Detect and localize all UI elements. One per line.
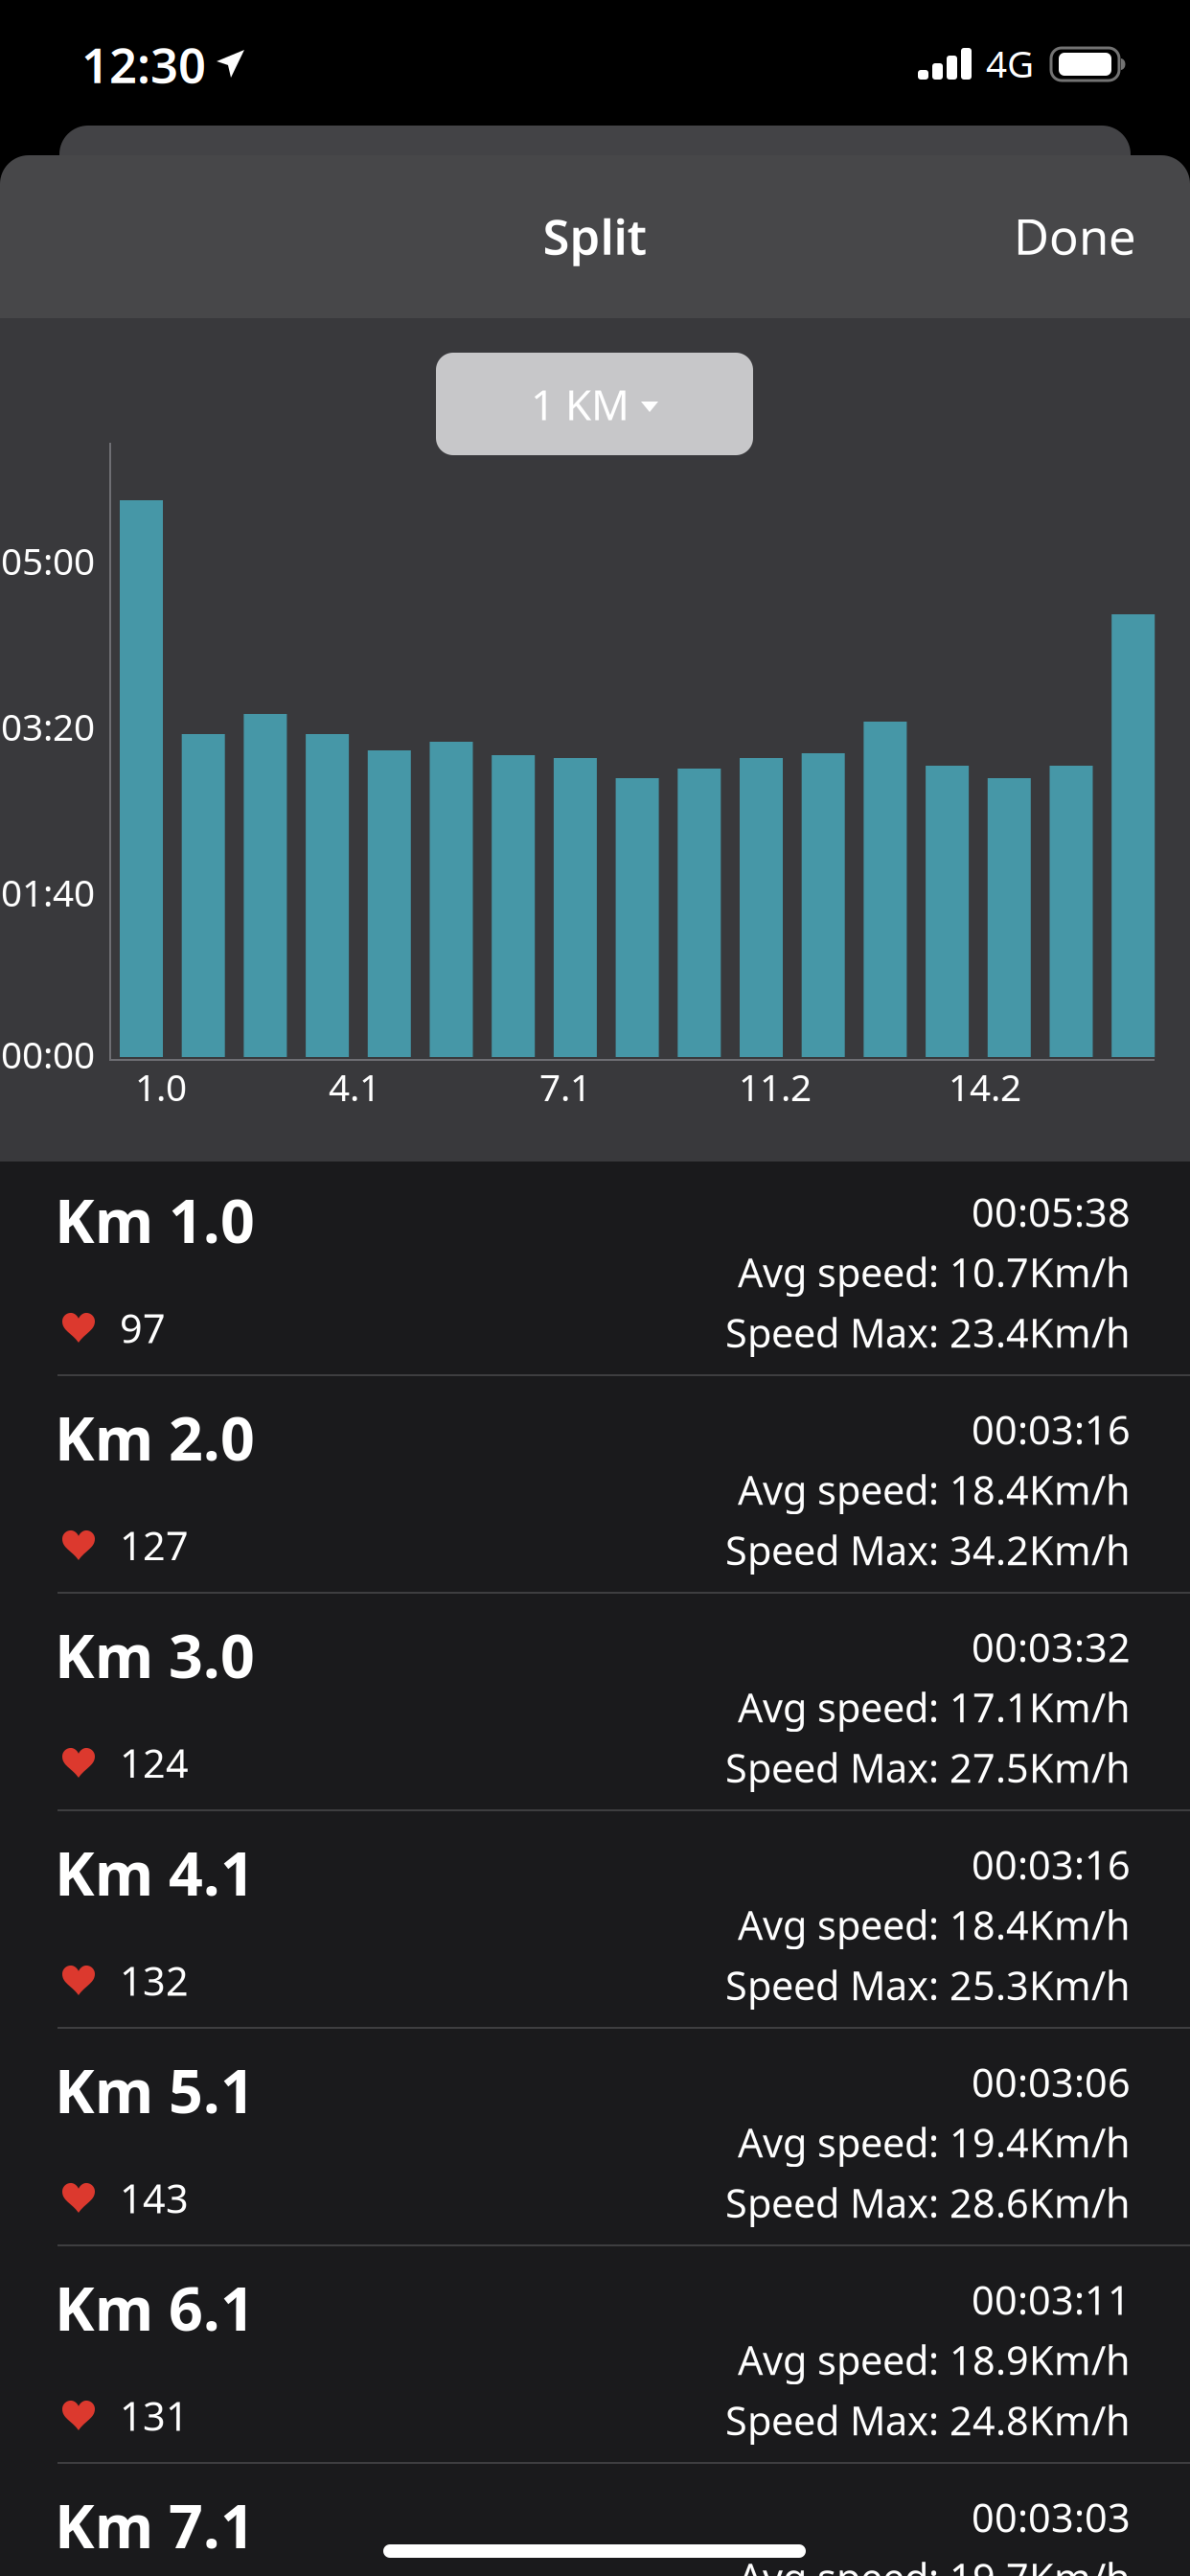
staticText: 12:30 — [81, 32, 206, 97]
staticText: 143 — [120, 2172, 189, 2224]
staticText: Avg speed: 10.7Km/h — [738, 1246, 1131, 1298]
staticText: Km 5.1 — [55, 2050, 255, 2130]
staticText: Avg speed: 18.4Km/h — [738, 1898, 1131, 1951]
staticText: 14.2 — [949, 1062, 1021, 1111]
staticText: 00:03:03 — [972, 2491, 1131, 2543]
staticText: 00:03:16 — [972, 1403, 1131, 1456]
staticText: 00:03:16 — [972, 1838, 1131, 1891]
staticText: Avg speed: 19.4Km/h — [738, 2116, 1131, 2169]
staticText: Speed Max: 23.4Km/h — [725, 1306, 1131, 1359]
staticText: 132 — [120, 1954, 189, 2007]
staticText: Done — [1014, 204, 1136, 268]
staticText: Speed Max: 27.5Km/h — [725, 1741, 1131, 1794]
staticText: 11.2 — [739, 1062, 812, 1111]
staticText: Avg speed: 19.7Km/h — [738, 2551, 1131, 2576]
staticText: 7.1 — [539, 1062, 591, 1111]
staticText: Avg speed: 18.4Km/h — [738, 1463, 1131, 1516]
staticText: 97 — [120, 1301, 166, 1354]
staticText: 1 KM — [531, 376, 629, 432]
staticText: 4.1 — [329, 1062, 380, 1111]
staticText: Speed Max: 28.6Km/h — [725, 2176, 1131, 2229]
staticText: 00:03:32 — [972, 1621, 1131, 1673]
staticText: Km 4.1 — [55, 1832, 255, 1912]
staticText: Km 1.0 — [55, 1180, 255, 1259]
staticText: 00:03:11 — [972, 2273, 1131, 2326]
staticText: 1.0 — [135, 1062, 187, 1111]
staticText: 127 — [120, 1519, 189, 1572]
staticText: Speed Max: 34.2Km/h — [725, 1524, 1131, 1576]
staticText: 05:00 — [1, 536, 95, 585]
staticText: 4G — [986, 39, 1034, 88]
staticText: Speed Max: 25.3Km/h — [725, 1959, 1131, 2011]
staticText: Km 2.0 — [55, 1397, 255, 1477]
staticText: Avg speed: 18.9Km/h — [738, 2333, 1131, 2386]
staticText: 03:20 — [1, 702, 95, 751]
staticText: Split — [543, 204, 647, 268]
staticText: Avg speed: 17.1Km/h — [738, 1681, 1131, 1733]
staticText: Km 3.0 — [55, 1615, 255, 1695]
button[interactable]: 1 KM — [436, 353, 753, 455]
button[interactable]: Done — [1014, 204, 1136, 268]
staticText: 00:00 — [1, 1030, 95, 1079]
staticText: 131 — [120, 2389, 189, 2442]
staticText: 01:40 — [1, 868, 95, 917]
staticText: 00:05:38 — [972, 1185, 1131, 1238]
staticText: Km 7.1 — [55, 2485, 255, 2565]
staticText: Km 6.1 — [55, 2267, 255, 2347]
staticText: Speed Max: 24.8Km/h — [725, 2394, 1131, 2446]
staticText: 124 — [120, 1736, 189, 1789]
staticText: 00:03:06 — [972, 2056, 1131, 2108]
